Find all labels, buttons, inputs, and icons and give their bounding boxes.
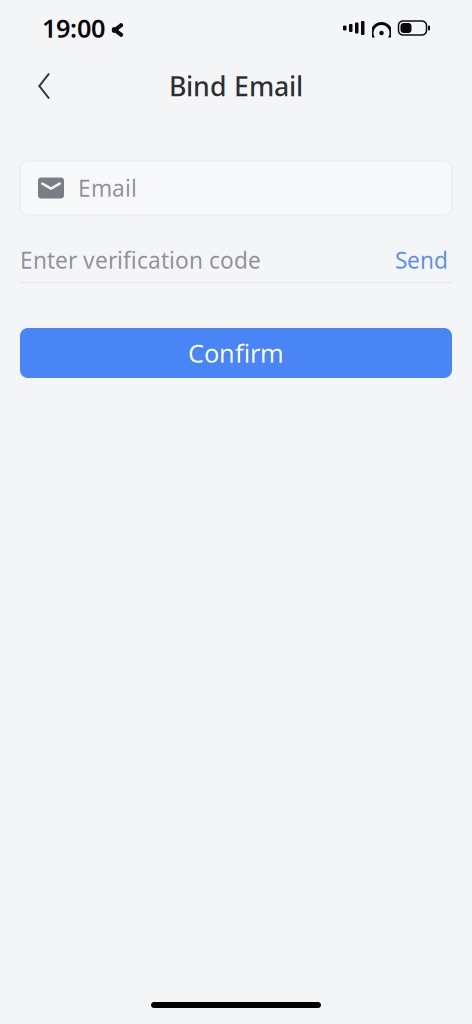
staticText: Enter verification code bbox=[20, 245, 261, 275]
staticText: Email bbox=[78, 173, 137, 203]
button[interactable]: Send bbox=[391, 239, 452, 281]
button[interactable]: Confirm bbox=[20, 328, 452, 378]
staticText: Confirm bbox=[188, 336, 284, 370]
staticText: Send bbox=[395, 245, 448, 275]
staticText: Bind Email bbox=[169, 68, 303, 104]
button[interactable]: Back bbox=[22, 64, 66, 108]
staticText: 19:00 bbox=[42, 11, 105, 45]
